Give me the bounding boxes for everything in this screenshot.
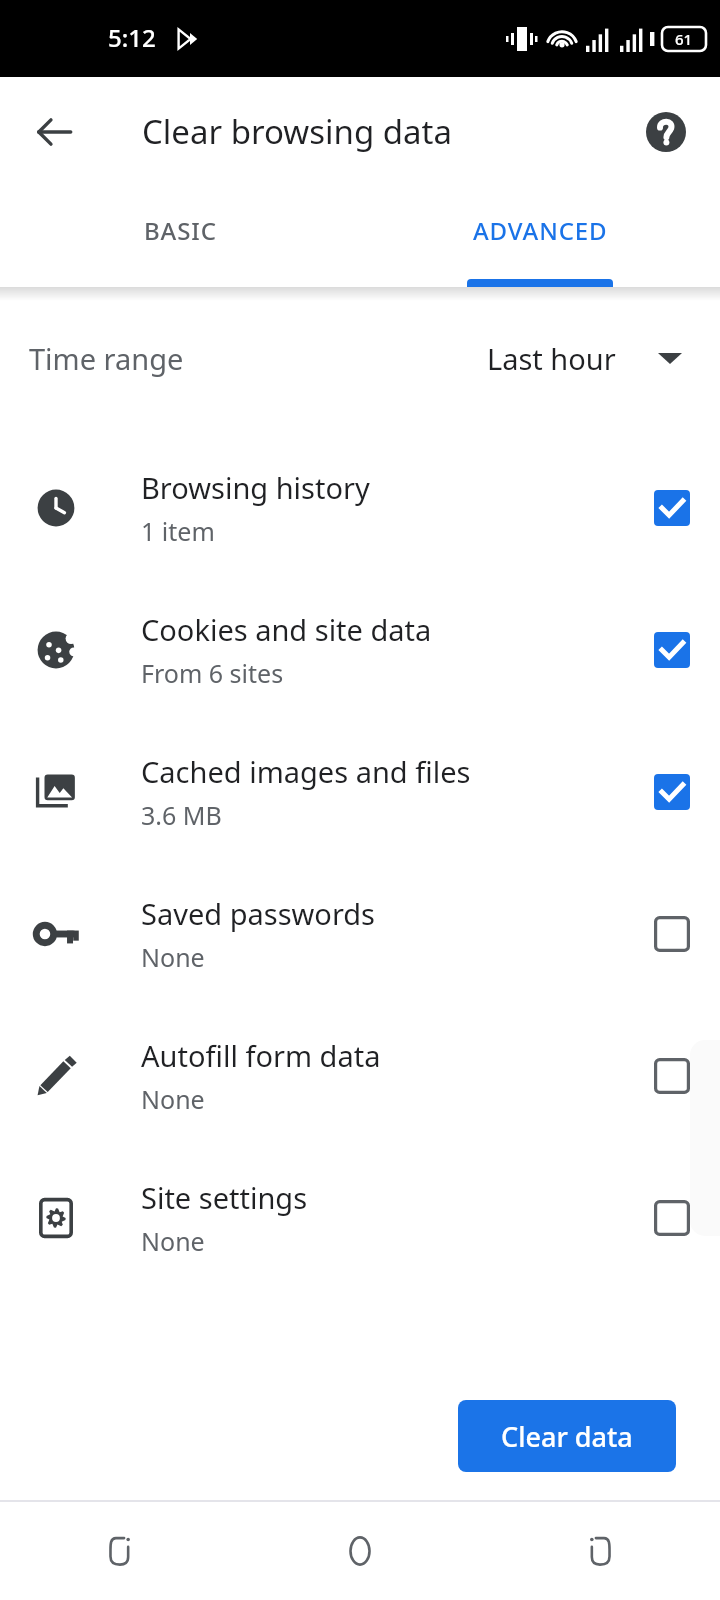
staticText: 5:12	[108, 21, 156, 54]
staticText: Clear browsing data	[142, 109, 453, 154]
button[interactable]: Back	[22, 100, 86, 164]
staticText: None	[141, 1082, 205, 1116]
button[interactable]: Site settings	[0, 1147, 720, 1289]
staticText: ADVANCED	[473, 214, 608, 247]
staticText: 1 item	[141, 514, 215, 548]
button[interactable]: Time range	[0, 321, 720, 395]
staticText: 61	[675, 29, 693, 49]
staticText: Site settings	[141, 1178, 308, 1217]
staticText: Last hour	[487, 339, 616, 378]
staticText: 3.6 MB	[141, 798, 222, 832]
button[interactable]: Help	[634, 100, 698, 164]
staticText: Cached images and files	[141, 752, 471, 791]
staticText: From 6 sites	[141, 656, 284, 690]
button[interactable]: Browsing history	[0, 437, 720, 579]
staticText: Clear data	[501, 1418, 633, 1455]
button[interactable]: Clear data	[458, 1400, 676, 1472]
button[interactable]: Autofill form data	[0, 1005, 720, 1147]
staticText: Browsing history	[141, 468, 370, 507]
staticText: Cookies and site data	[141, 610, 432, 649]
button[interactable]: Cookies and site data	[0, 579, 720, 721]
staticText: Autofill form data	[141, 1036, 381, 1075]
button[interactable]: Saved passwords	[0, 863, 720, 1005]
staticText: Time range	[29, 339, 184, 378]
button[interactable]: ADVANCED	[360, 187, 720, 287]
staticText: Saved passwords	[141, 894, 376, 933]
staticText: BASIC	[144, 214, 217, 247]
button[interactable]: BASIC	[0, 187, 360, 287]
staticText: None	[141, 940, 205, 974]
button[interactable]: Back	[0, 1502, 240, 1600]
button[interactable]: Cached images and files	[0, 721, 720, 863]
staticText: None	[141, 1224, 205, 1258]
button[interactable]: Recent apps	[480, 1502, 720, 1600]
button[interactable]: Home	[240, 1502, 480, 1600]
